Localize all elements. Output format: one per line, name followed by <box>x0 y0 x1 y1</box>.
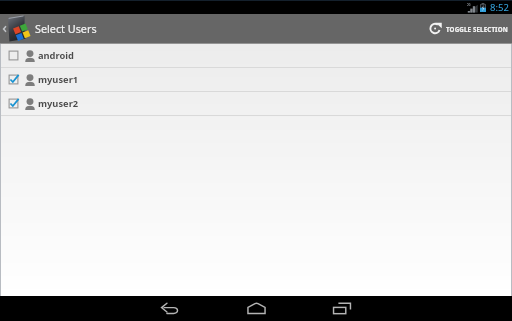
button[interactable]: Home <box>213 296 299 321</box>
button[interactable]: myuser2 <box>0 92 512 115</box>
button[interactable]: Recent apps <box>299 296 385 321</box>
button[interactable]: myuser1 <box>0 68 512 91</box>
staticText: myuser1 <box>38 73 79 86</box>
button[interactable]: TOGGLE SELECTION <box>423 14 512 43</box>
staticText: TOGGLE SELECTION <box>446 25 508 33</box>
staticText: Select Users <box>35 21 97 36</box>
button[interactable]: Back <box>127 296 213 321</box>
other: Up <box>3 26 6 32</box>
button[interactable]: Up <box>0 14 97 43</box>
staticText: android <box>38 49 74 62</box>
button[interactable]: android <box>0 44 512 67</box>
staticText: myuser2 <box>38 97 79 110</box>
staticText: 8:52 <box>490 1 509 14</box>
